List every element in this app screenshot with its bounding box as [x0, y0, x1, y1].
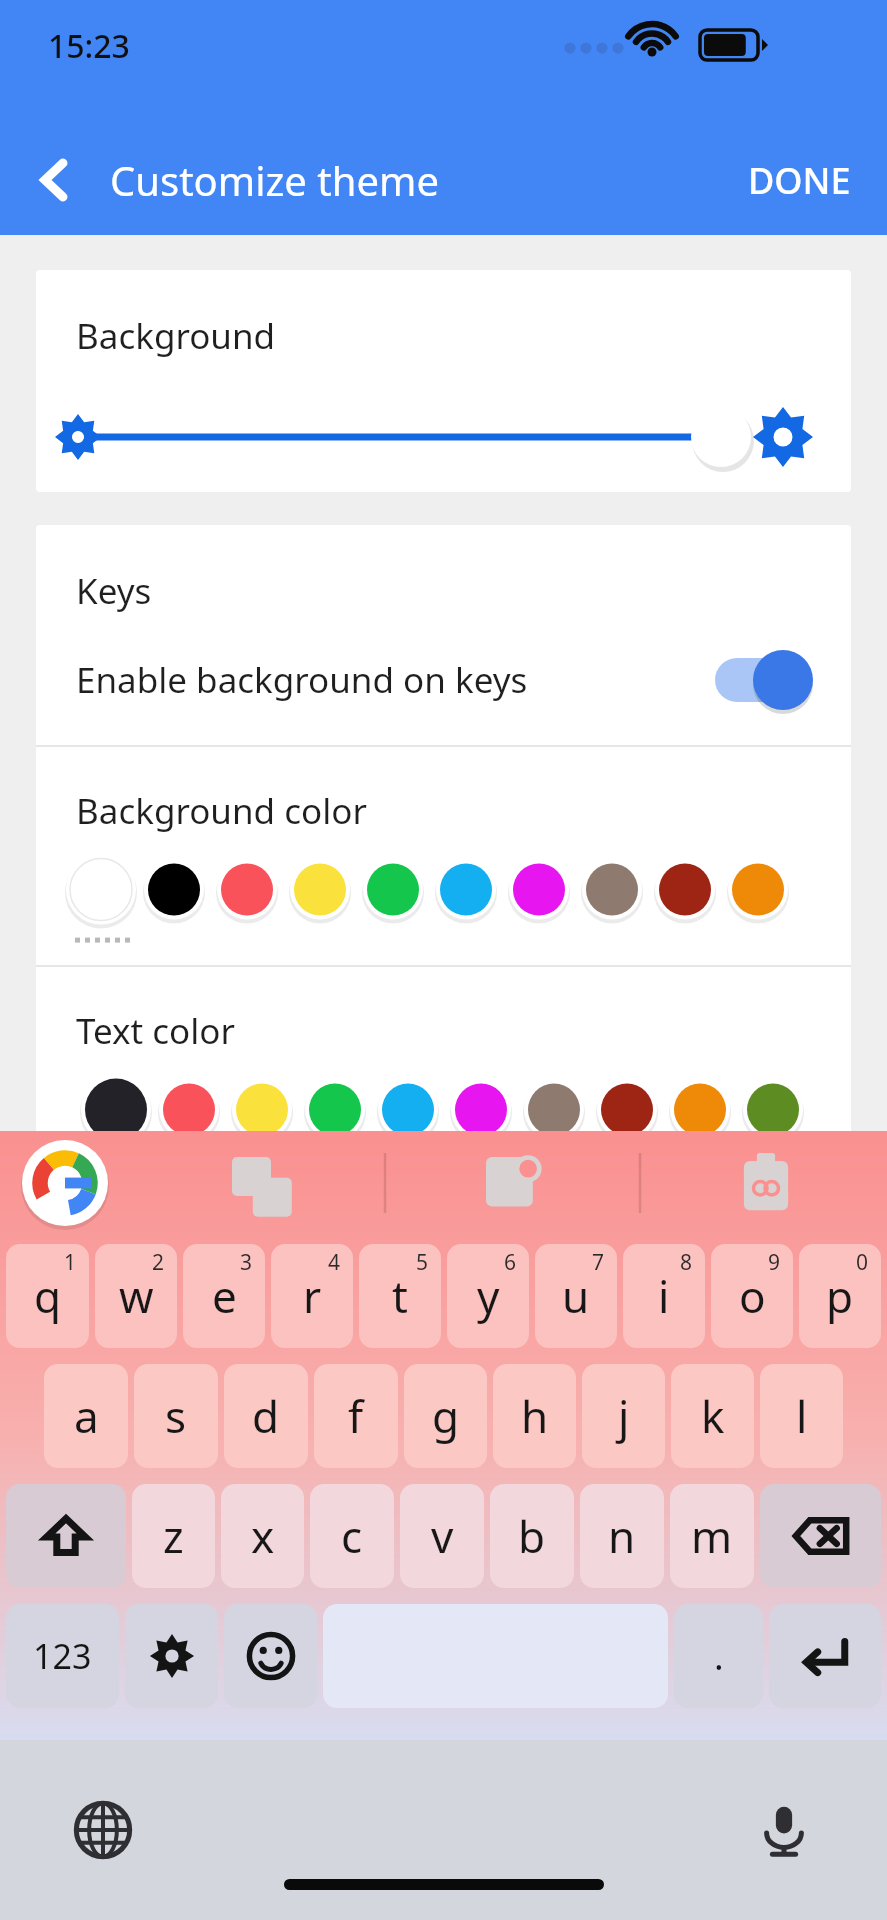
staticText: l [796, 1386, 808, 1446]
button[interactable]: Backspace [760, 1484, 881, 1588]
staticText: h [521, 1386, 549, 1446]
staticText: DONE [748, 156, 851, 205]
button[interactable]: e [183, 1244, 265, 1348]
button[interactable]: Enable background on keys [36, 615, 851, 745]
button[interactable] [36, 1055, 851, 1185]
button[interactable]: v [400, 1484, 484, 1588]
staticText: Enable background on keys [76, 656, 715, 704]
staticText: b [518, 1506, 546, 1566]
button[interactable]: m [670, 1484, 754, 1588]
button[interactable]: u [535, 1244, 617, 1348]
staticText: 0 [856, 1248, 869, 1277]
staticText: e [212, 1266, 237, 1326]
button[interactable]: p [799, 1244, 881, 1348]
staticText: Background [76, 312, 276, 360]
staticText: 9 [768, 1248, 781, 1277]
button[interactable]: n [580, 1484, 664, 1588]
staticText: r [303, 1266, 322, 1326]
button[interactable]: c [310, 1484, 394, 1588]
staticText: 6 [504, 1248, 517, 1277]
button[interactable] [36, 835, 851, 965]
button[interactable]: g [404, 1364, 487, 1468]
staticText: a [74, 1386, 99, 1446]
staticText: k [701, 1386, 725, 1446]
button[interactable]: DONE [748, 125, 887, 235]
button[interactable]: i [623, 1244, 705, 1348]
button[interactable]: h [493, 1364, 576, 1468]
staticText: z [163, 1506, 184, 1566]
button[interactable]: k [671, 1364, 754, 1468]
staticText: 123 [33, 1633, 92, 1679]
staticText: 2 [152, 1248, 165, 1277]
staticText: s [165, 1386, 187, 1446]
staticText: w [119, 1266, 154, 1326]
staticText: d [252, 1386, 280, 1446]
button[interactable]: l [760, 1364, 843, 1468]
staticText: u [562, 1266, 590, 1326]
button[interactable]: d [224, 1364, 308, 1468]
staticText: 8 [680, 1248, 693, 1277]
button[interactable]: Emoji [224, 1604, 317, 1708]
button[interactable]: 123 [6, 1604, 119, 1708]
button[interactable]: Shift [6, 1484, 126, 1588]
button[interactable]: Voice input [729, 1775, 839, 1885]
staticText: j [618, 1386, 630, 1446]
button[interactable]: q [6, 1244, 89, 1348]
button[interactable]: f [314, 1364, 398, 1468]
staticText: c [341, 1506, 363, 1566]
staticText: . [714, 1632, 724, 1681]
staticText: o [739, 1266, 766, 1326]
staticText: q [34, 1266, 62, 1326]
staticText: g [432, 1386, 460, 1446]
staticText: Keys [76, 567, 152, 615]
staticText: Customize theme [110, 153, 748, 207]
staticText: Text color [76, 1007, 235, 1055]
button[interactable]: Change language [48, 1775, 158, 1885]
button[interactable]: Back [0, 125, 110, 235]
staticText: p [826, 1266, 854, 1326]
button[interactable]: j [582, 1364, 665, 1468]
staticText: t [392, 1266, 408, 1326]
staticText: 7 [592, 1248, 605, 1277]
button[interactable]: r [271, 1244, 353, 1348]
staticText: 5 [416, 1248, 429, 1277]
button[interactable]: a [44, 1364, 128, 1468]
staticText: m [691, 1506, 733, 1566]
button[interactable]: Enter [769, 1604, 881, 1708]
button[interactable] [36, 382, 851, 492]
button[interactable]: o [711, 1244, 793, 1348]
staticText: 4 [328, 1248, 341, 1277]
button[interactable]: t [359, 1244, 441, 1348]
staticText: v [431, 1506, 454, 1566]
staticText: n [608, 1506, 636, 1566]
button[interactable]: z [132, 1484, 215, 1588]
button[interactable]: . [674, 1604, 763, 1708]
button[interactable]: b [490, 1484, 574, 1588]
button[interactable]: s [134, 1364, 218, 1468]
button[interactable]: w [95, 1244, 177, 1348]
staticText: Background color [76, 787, 367, 835]
staticText: x [251, 1506, 275, 1566]
staticText: 3 [240, 1248, 253, 1277]
button[interactable]: x [221, 1484, 304, 1588]
staticText: 1 [64, 1248, 77, 1277]
button[interactable]: y [447, 1244, 529, 1348]
staticText: y [477, 1266, 500, 1326]
staticText: f [348, 1386, 364, 1446]
staticText: 15:23 [48, 24, 130, 68]
button[interactable]: Settings [125, 1604, 218, 1708]
staticText: i [658, 1266, 670, 1326]
